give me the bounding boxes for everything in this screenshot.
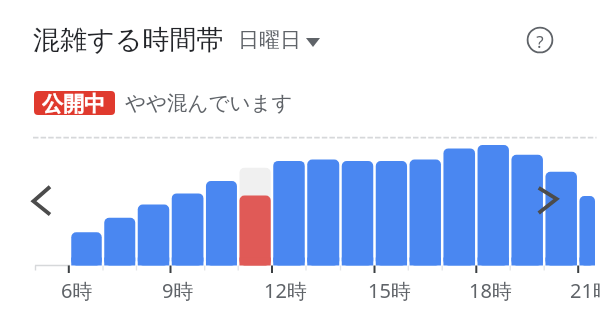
- button[interactable]: Previous day: [22, 180, 62, 220]
- staticText: 混雑する時間帯: [33, 23, 224, 57]
- button[interactable]: Next day: [530, 180, 570, 220]
- staticText: 9時: [162, 277, 194, 304]
- staticText: 15時: [368, 277, 411, 304]
- staticText: 日曜日: [238, 27, 301, 53]
- staticText: 12時: [264, 277, 307, 304]
- staticText: ?: [522, 30, 558, 52]
- staticText: 公開中: [42, 91, 105, 115]
- staticText: やや混んでいます: [125, 90, 293, 116]
- staticText: 18時: [469, 277, 512, 304]
- staticText: 6時: [61, 277, 93, 304]
- button[interactable]: 公開中: [34, 91, 115, 115]
- button[interactable]: 日曜日: [238, 27, 301, 53]
- staticText: 21時: [570, 277, 600, 304]
- button[interactable]: Help: [522, 22, 558, 58]
